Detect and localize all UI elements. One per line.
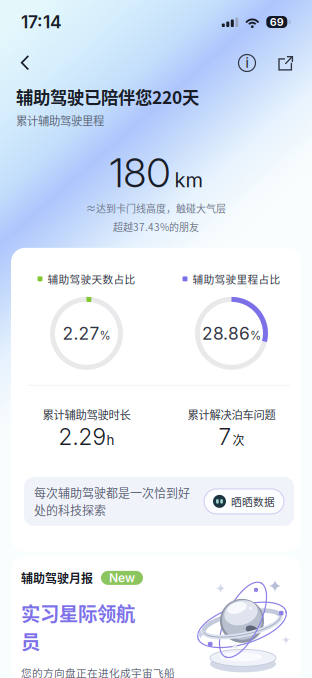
staticText: 2.27: [62, 323, 99, 344]
staticText: 晒晒数据: [231, 494, 275, 509]
staticText: ≈达到卡门线高度，触碰大气层: [86, 201, 226, 215]
staticText: 69: [270, 15, 284, 28]
staticText: 17:14: [21, 11, 62, 32]
staticText: km: [174, 168, 202, 192]
staticText: 次: [232, 431, 244, 449]
button[interactable]: Back: [13, 49, 37, 76]
staticText: 每次辅助驾驶都是一次恰到好处的科技探索: [34, 484, 190, 519]
staticText: 7: [218, 423, 231, 451]
staticText: 累计解决泊车问题: [187, 406, 275, 423]
staticText: 2.29: [58, 423, 105, 451]
staticText: %: [99, 329, 110, 342]
staticText: 辅助驾驶天数占比: [47, 271, 135, 286]
staticText: 您的方向盘正在进化成宇宙飞船: [21, 665, 175, 678]
staticText: 辅助驾驶月报: [21, 569, 93, 587]
staticText: %: [250, 329, 261, 342]
staticText: 累计辅助驾驶时长: [42, 406, 130, 423]
button[interactable]: Info: [233, 49, 261, 77]
staticText: 28.86: [202, 323, 250, 344]
staticText: 超越37.43%的朋友: [113, 219, 199, 234]
staticText: New: [109, 571, 135, 585]
staticText: 180: [109, 148, 170, 197]
staticText: 累计辅助驾驶里程: [16, 112, 104, 128]
button[interactable]: Share: [272, 49, 299, 76]
button[interactable]: 晒晒数据: [204, 489, 284, 514]
staticText: 辅助驾驶已陪伴您220天: [16, 84, 199, 109]
staticText: 实习星际领航员: [21, 599, 135, 655]
staticText: h: [106, 432, 114, 448]
staticText: 辅助驾驶里程占比: [192, 271, 280, 286]
staticText: i: [245, 55, 248, 71]
